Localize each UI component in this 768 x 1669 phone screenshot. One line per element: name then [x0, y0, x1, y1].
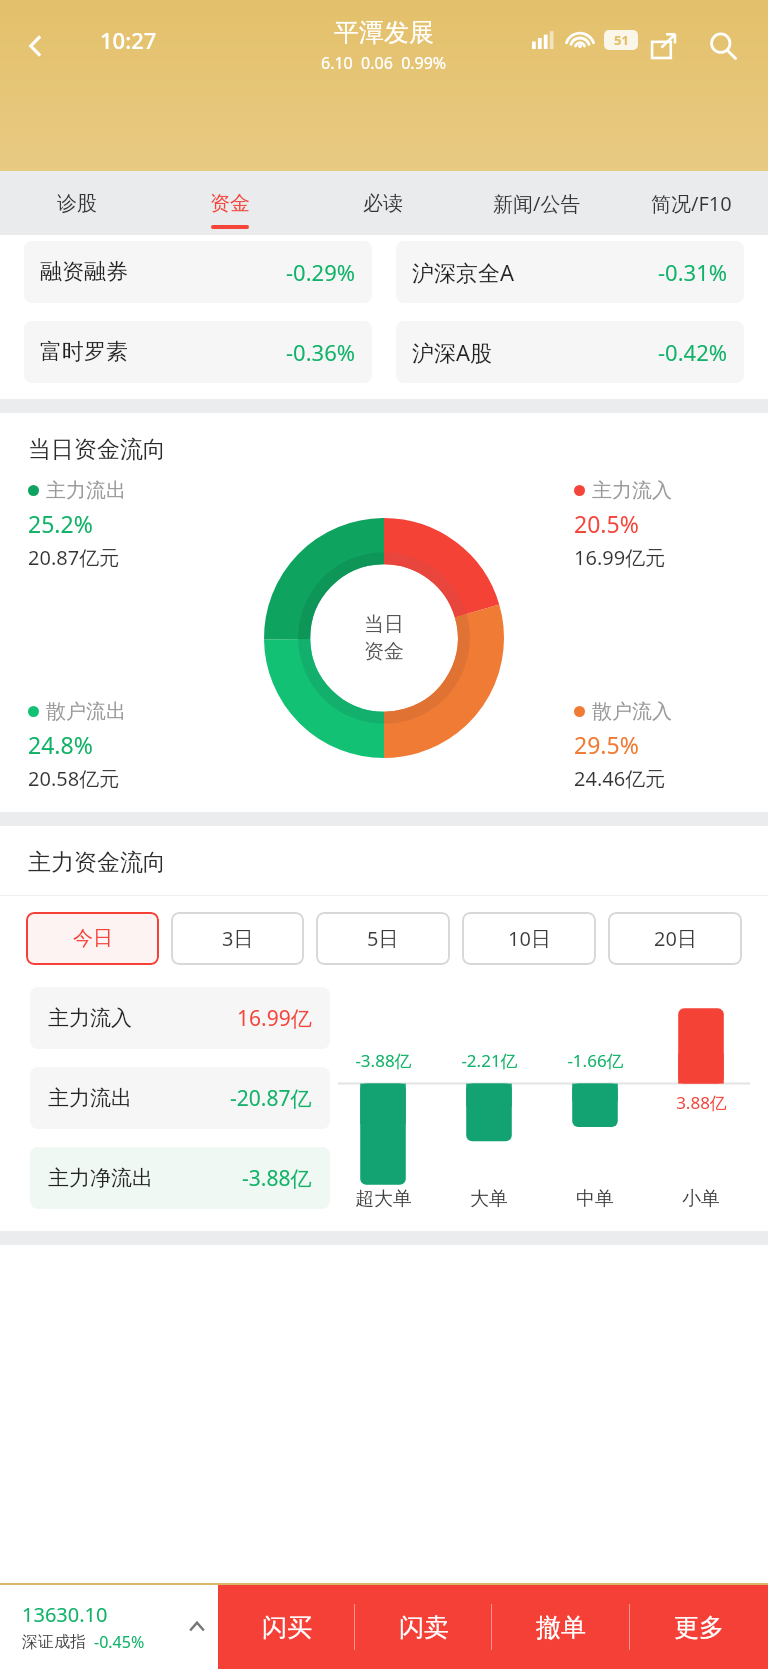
staticText: 平潭发展 [334, 17, 434, 48]
staticText: 20.87亿元 [28, 544, 120, 571]
staticText: 24.8% [28, 729, 93, 760]
button[interactable]: Back [8, 18, 64, 74]
button[interactable]: 简况/F10 [614, 171, 768, 235]
button[interactable]: 13630.10 [0, 1585, 218, 1669]
button[interactable]: 沪深京全A [396, 241, 744, 303]
button[interactable]: 闪买 [218, 1585, 355, 1669]
staticText: 资金 [364, 639, 404, 664]
staticText: 中单 [576, 1187, 614, 1211]
button[interactable]: 沪深A股 [396, 321, 744, 383]
staticText: 简况/F10 [651, 190, 732, 217]
staticText: -3.88亿 [242, 1164, 312, 1193]
staticText: 20.5% [574, 508, 639, 539]
staticText: 13630.10 [22, 1601, 108, 1628]
staticText: 沪深京全A [412, 257, 515, 287]
staticText: 6.10 0.06 0.99% [321, 52, 447, 74]
staticText: 资金 [210, 191, 250, 216]
button[interactable]: 必读 [306, 171, 460, 235]
staticText: 当日 [364, 612, 404, 637]
staticText: 散户流入 [592, 699, 672, 724]
staticText: 超大单 [355, 1187, 412, 1211]
staticText: 29.5% [574, 729, 639, 760]
button[interactable]: 5日 [316, 912, 450, 965]
staticText: 25.2% [28, 508, 93, 539]
staticText: 20日 [654, 925, 697, 952]
staticText: 融资融券 [40, 258, 128, 286]
staticText: 主力流出 [46, 478, 126, 503]
button[interactable]: 资金 [153, 171, 306, 235]
staticText: -0.45% [94, 1631, 145, 1653]
staticText: 小单 [682, 1187, 720, 1211]
staticText: 51 [614, 31, 629, 49]
staticText: 20.58亿元 [28, 765, 120, 792]
staticText: 沪深A股 [412, 337, 493, 367]
button[interactable]: 诊股 [0, 171, 153, 235]
staticText: 主力流入 [48, 1005, 132, 1031]
button[interactable]: 新闻/公告 [460, 171, 614, 235]
staticText: 16.99亿 [237, 1004, 312, 1033]
button[interactable]: 融资融券 [24, 241, 372, 303]
staticText: 24.46亿元 [574, 765, 666, 792]
button[interactable]: 主力流出 [30, 1067, 330, 1129]
button[interactable]: 3日 [171, 912, 304, 965]
button[interactable]: 闪卖 [355, 1585, 492, 1669]
staticText: -20.87亿 [230, 1084, 312, 1113]
staticText: 更多 [674, 1612, 724, 1643]
staticText: 主力流入 [592, 478, 672, 503]
staticText: 富时罗素 [40, 338, 128, 366]
staticText: 主力流出 [48, 1085, 132, 1111]
staticText: -0.36% [286, 337, 356, 367]
staticText: -3.88亿 [355, 1049, 412, 1072]
button[interactable]: 更多 [630, 1585, 768, 1669]
button[interactable]: 撤单 [492, 1585, 630, 1669]
button[interactable]: 富时罗素 [24, 321, 372, 383]
staticText: 深证成指 [22, 1632, 86, 1652]
staticText: 闪卖 [399, 1612, 449, 1643]
staticText: 撤单 [536, 1612, 586, 1643]
staticText: 10日 [508, 925, 551, 952]
staticText: 当日资金流向 [28, 435, 166, 464]
staticText: 闪买 [262, 1612, 312, 1643]
staticText: 3日 [222, 925, 254, 952]
staticText: -0.42% [658, 337, 728, 367]
staticText: 主力资金流向 [28, 848, 166, 877]
button[interactable]: 今日 [26, 912, 159, 965]
staticText: 今日 [73, 926, 113, 951]
staticText: 主力净流出 [48, 1165, 153, 1191]
staticText: 散户流出 [46, 699, 126, 724]
button[interactable]: Share [638, 21, 688, 71]
button[interactable]: Search [698, 21, 748, 71]
staticText: -0.31% [658, 257, 728, 287]
staticText: 10:27 [100, 25, 157, 55]
staticText: 3.88亿 [676, 1091, 727, 1114]
staticText: -1.66亿 [567, 1049, 624, 1072]
staticText: 新闻/公告 [493, 190, 581, 217]
staticText: 大单 [470, 1187, 508, 1211]
staticText: 诊股 [57, 191, 97, 216]
button[interactable]: 20日 [608, 912, 742, 965]
button[interactable]: 10日 [462, 912, 596, 965]
staticText: -0.29% [286, 257, 356, 287]
staticText: 16.99亿元 [574, 544, 666, 571]
staticText: 必读 [363, 191, 403, 216]
staticText: 5日 [367, 925, 399, 952]
staticText: -2.21亿 [461, 1049, 518, 1072]
button[interactable]: 主力净流出 [30, 1147, 330, 1209]
button[interactable]: 主力流入 [30, 987, 330, 1049]
